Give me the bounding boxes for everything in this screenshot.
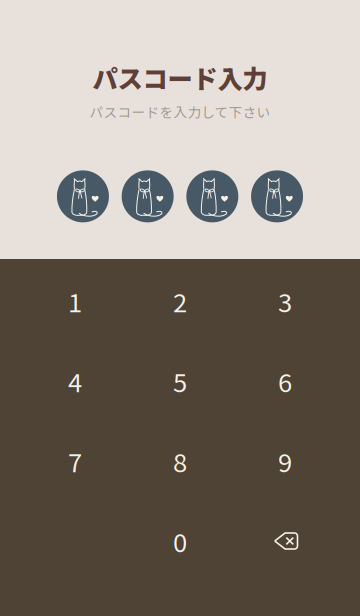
staticText: 1 bbox=[68, 282, 82, 320]
button[interactable]: 0 bbox=[127, 501, 232, 581]
staticText: 8 bbox=[173, 442, 187, 480]
button[interactable]: 3 bbox=[232, 261, 337, 341]
button[interactable]: 6 bbox=[232, 341, 337, 421]
staticText: 4 bbox=[68, 362, 82, 400]
staticText: 7 bbox=[68, 442, 82, 480]
staticText: 2 bbox=[173, 282, 187, 320]
staticText: 3 bbox=[278, 282, 292, 320]
button[interactable]: 1 bbox=[22, 261, 127, 341]
staticText: 5 bbox=[173, 362, 187, 400]
staticText: 6 bbox=[278, 362, 292, 400]
button[interactable]: 2 bbox=[127, 261, 232, 341]
button[interactable]: 9 bbox=[232, 421, 337, 501]
button[interactable]: 4 bbox=[22, 341, 127, 421]
staticText: パスコード入力 bbox=[92, 59, 267, 96]
button[interactable]: 7 bbox=[22, 421, 127, 501]
staticText: 0 bbox=[173, 522, 187, 560]
button[interactable]: 5 bbox=[127, 341, 232, 421]
button[interactable]: 8 bbox=[127, 421, 232, 501]
button[interactable]: Delete bbox=[232, 501, 337, 581]
staticText: パスコードを入力して下さい bbox=[89, 102, 270, 121]
staticText: 9 bbox=[278, 442, 292, 480]
